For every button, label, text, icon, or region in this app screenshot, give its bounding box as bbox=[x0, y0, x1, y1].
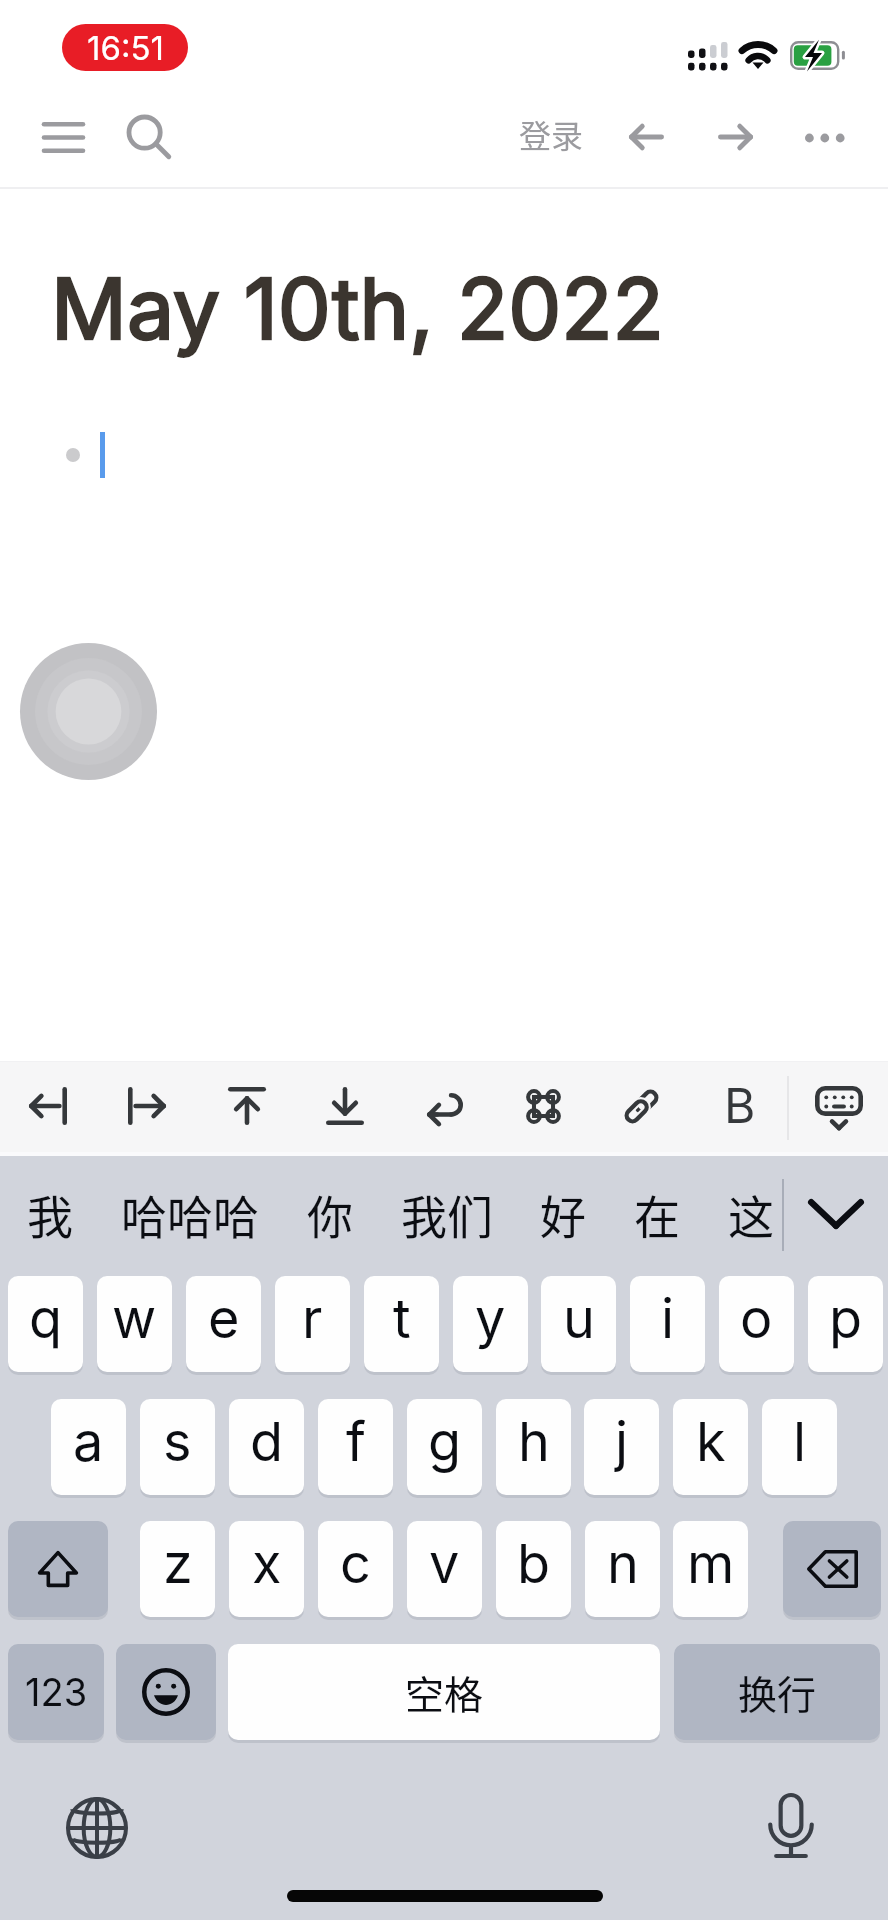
staticText: w bbox=[112, 1286, 157, 1351]
button[interactable]: c bbox=[318, 1521, 393, 1617]
button[interactable]: r bbox=[275, 1276, 350, 1372]
staticText: r bbox=[302, 1286, 323, 1351]
button[interactable]: n bbox=[585, 1521, 660, 1617]
staticText: x bbox=[252, 1531, 282, 1596]
button[interactable]: Menu bbox=[28, 105, 98, 169]
staticText: 16:51 bbox=[87, 28, 164, 68]
button[interactable]: Hide keyboard bbox=[789, 1062, 888, 1152]
staticText: u bbox=[563, 1286, 595, 1351]
button[interactable]: More options bbox=[793, 106, 857, 170]
staticText: 登录 bbox=[519, 111, 584, 157]
button[interactable]: 登录 bbox=[508, 103, 594, 165]
staticText: v bbox=[429, 1531, 460, 1596]
button[interactable]: d bbox=[229, 1399, 304, 1495]
button[interactable]: z bbox=[140, 1521, 215, 1617]
button[interactable]: Move to bottom bbox=[296, 1062, 394, 1152]
button[interactable]: 这 bbox=[722, 1171, 780, 1258]
button[interactable]: Move to top bbox=[198, 1062, 296, 1152]
button[interactable]: e bbox=[186, 1276, 261, 1372]
staticText: 这 bbox=[728, 1181, 774, 1248]
staticText: g bbox=[428, 1409, 462, 1474]
staticText: o bbox=[740, 1286, 773, 1351]
staticText: B bbox=[724, 1076, 756, 1134]
staticText: p bbox=[829, 1286, 863, 1351]
staticText: 123 bbox=[25, 1669, 88, 1715]
button[interactable]: s bbox=[140, 1399, 215, 1495]
button[interactable]: Command bbox=[494, 1062, 592, 1152]
button[interactable]: 换行 bbox=[674, 1644, 880, 1740]
button[interactable]: p bbox=[808, 1276, 883, 1372]
staticText: 你 bbox=[307, 1181, 353, 1248]
staticText: May 10th, 2022 bbox=[51, 258, 664, 360]
button[interactable]: t bbox=[364, 1276, 439, 1372]
staticText: t bbox=[393, 1286, 411, 1351]
staticText: 好 bbox=[540, 1181, 586, 1248]
staticText: 换行 bbox=[738, 1664, 817, 1720]
button[interactable]: b bbox=[496, 1521, 571, 1617]
staticText: k bbox=[696, 1409, 726, 1474]
staticText: z bbox=[163, 1531, 193, 1596]
button[interactable]: j bbox=[584, 1399, 659, 1495]
staticText: 空格 bbox=[405, 1664, 484, 1720]
staticText: b bbox=[517, 1531, 551, 1596]
staticText: e bbox=[208, 1286, 240, 1351]
button[interactable]: Indent bbox=[98, 1062, 196, 1152]
button[interactable]: 你 bbox=[301, 1171, 359, 1258]
button[interactable]: Switch language bbox=[59, 1790, 135, 1866]
button[interactable]: m bbox=[673, 1521, 748, 1617]
button[interactable]: Voice input bbox=[753, 1786, 829, 1862]
staticText: m bbox=[687, 1531, 735, 1596]
staticText: d bbox=[250, 1409, 284, 1474]
button[interactable]: y bbox=[453, 1276, 528, 1372]
button[interactable]: Insert link bbox=[592, 1062, 690, 1152]
staticText: 我 bbox=[27, 1181, 73, 1248]
button[interactable]: New line bbox=[395, 1062, 493, 1152]
button[interactable]: Bold bbox=[691, 1062, 789, 1152]
staticText: l bbox=[793, 1409, 807, 1474]
staticText: 我们 bbox=[401, 1181, 493, 1248]
button[interactable]: 我 bbox=[21, 1171, 79, 1258]
button[interactable]: x bbox=[229, 1521, 304, 1617]
button[interactable]: 我们 bbox=[395, 1171, 499, 1258]
button[interactable]: a bbox=[51, 1399, 126, 1495]
staticText: 哈哈哈 bbox=[121, 1181, 259, 1248]
button[interactable]: k bbox=[673, 1399, 748, 1495]
staticText: j bbox=[615, 1409, 629, 1474]
button[interactable]: h bbox=[496, 1399, 571, 1495]
staticText: y bbox=[475, 1286, 506, 1351]
button[interactable]: 123 bbox=[8, 1644, 104, 1740]
staticText: q bbox=[29, 1286, 63, 1351]
button[interactable]: Back bbox=[614, 105, 678, 169]
staticText: i bbox=[661, 1286, 675, 1351]
staticText: n bbox=[607, 1531, 639, 1596]
button[interactable]: Outdent bbox=[0, 1062, 97, 1152]
button[interactable]: g bbox=[407, 1399, 482, 1495]
button[interactable]: f bbox=[318, 1399, 393, 1495]
staticText: s bbox=[163, 1409, 192, 1474]
button[interactable]: 空格 bbox=[228, 1644, 660, 1740]
button[interactable]: Shift bbox=[8, 1521, 108, 1617]
button[interactable]: w bbox=[97, 1276, 172, 1372]
button[interactable]: Backspace bbox=[783, 1521, 881, 1617]
staticText: a bbox=[73, 1409, 104, 1474]
button[interactable]: Search bbox=[114, 105, 184, 169]
staticText: h bbox=[518, 1409, 550, 1474]
button[interactable]: Emoji bbox=[116, 1644, 216, 1740]
button[interactable]: i bbox=[630, 1276, 705, 1372]
button[interactable]: 在 bbox=[628, 1171, 686, 1258]
button[interactable]: l bbox=[762, 1399, 837, 1495]
button[interactable]: 哈哈哈 bbox=[115, 1171, 265, 1258]
button[interactable]: Expand candidates bbox=[784, 1152, 888, 1276]
button[interactable]: q bbox=[8, 1276, 83, 1372]
staticText: c bbox=[340, 1531, 371, 1596]
button[interactable]: o bbox=[719, 1276, 794, 1372]
staticText: 在 bbox=[634, 1181, 680, 1248]
button[interactable]: u bbox=[541, 1276, 616, 1372]
button[interactable]: v bbox=[407, 1521, 482, 1617]
button[interactable]: 好 bbox=[534, 1171, 592, 1258]
staticText: f bbox=[346, 1409, 366, 1474]
button[interactable]: Forward bbox=[703, 105, 767, 169]
